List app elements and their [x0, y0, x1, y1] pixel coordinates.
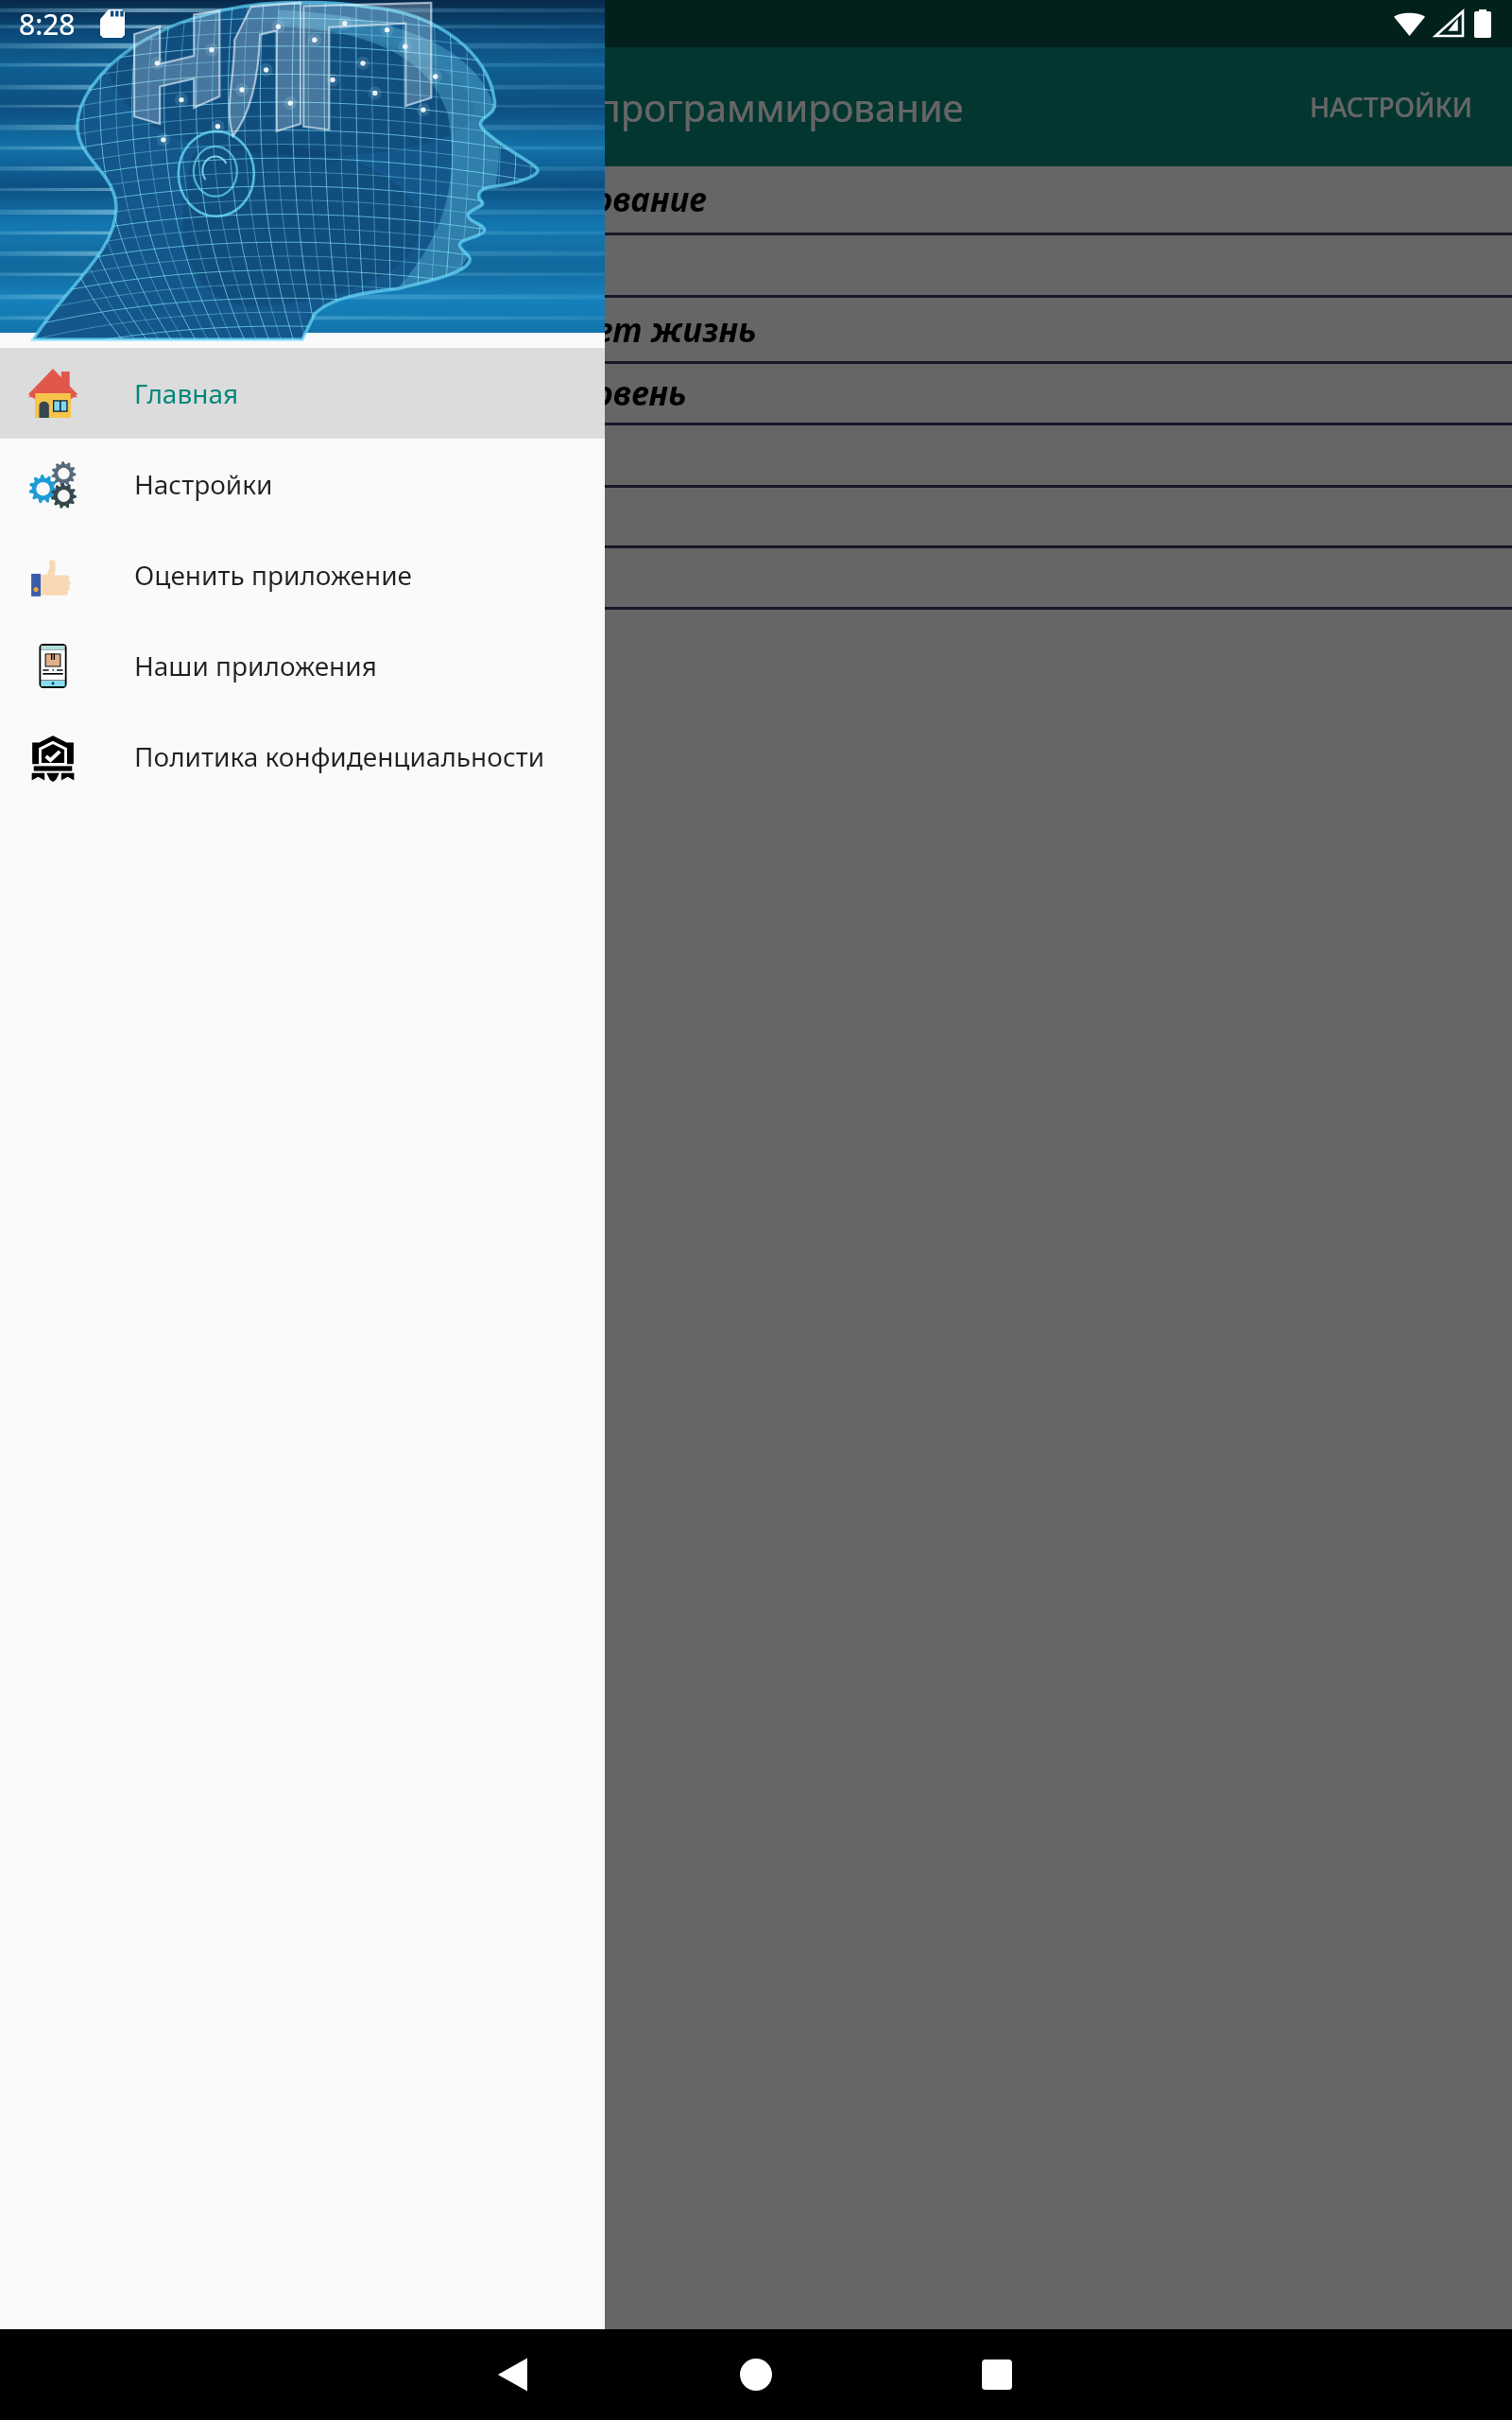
staticText: Якорение эмоций	[30, 494, 309, 540]
staticText: Калибровка и подстройка	[30, 433, 457, 478]
button[interactable]: Оценить приложение	[0, 529, 605, 620]
button[interactable]: Главная	[0, 348, 605, 439]
button[interactable]: Якорение эмоций	[0, 488, 1512, 545]
staticText: Главная	[134, 375, 239, 411]
staticText: Пресуппозиции НЛП	[30, 243, 353, 288]
button[interactable]: Recent apps	[952, 2329, 1042, 2420]
button[interactable]: Наши приложения	[0, 620, 605, 711]
button[interactable]: Back	[467, 2329, 558, 2420]
button[interactable]: Нейро-лингвистическое программирование	[0, 166, 1512, 233]
button[interactable]: Пресуппозиции НЛП	[0, 235, 1512, 295]
staticText: Рефрейминг смысла	[30, 555, 359, 600]
staticText: Политика конфиденциальности	[134, 738, 545, 774]
button[interactable]: Политика конфиденциальности	[0, 711, 605, 802]
button[interactable]: НАСТРОЙКИ	[1270, 47, 1512, 166]
button[interactable]: Настройки	[0, 439, 605, 529]
staticText: НАСТРОЙКИ	[1310, 89, 1472, 125]
staticText: Оценить приложение	[134, 557, 413, 593]
staticText: Настройки	[134, 466, 273, 502]
staticText: Как НЛП меняет мышление и улучшает жизнь	[0, 307, 757, 353]
button[interactable]: Как НЛП меняет мышление и улучшает жизнь	[0, 298, 1512, 361]
staticText: Раппорт и доверие. Продвинутый уровень	[0, 371, 687, 416]
button[interactable]: Close navigation drawer	[0, 0, 1512, 2420]
button[interactable]: Home	[711, 2329, 801, 2420]
staticText: 8:28	[19, 5, 76, 43]
staticText: Нейролингвистическое программирование	[156, 81, 964, 132]
button[interactable]: Рефрейминг смысла	[0, 548, 1512, 607]
staticText: Нейро-лингвистическое программирование	[0, 177, 707, 222]
button[interactable]: Калибровка и подстройка	[0, 425, 1512, 485]
button[interactable]: Раппорт и доверие. Продвинутый уровень	[0, 364, 1512, 423]
staticText: Наши приложения	[134, 648, 377, 683]
